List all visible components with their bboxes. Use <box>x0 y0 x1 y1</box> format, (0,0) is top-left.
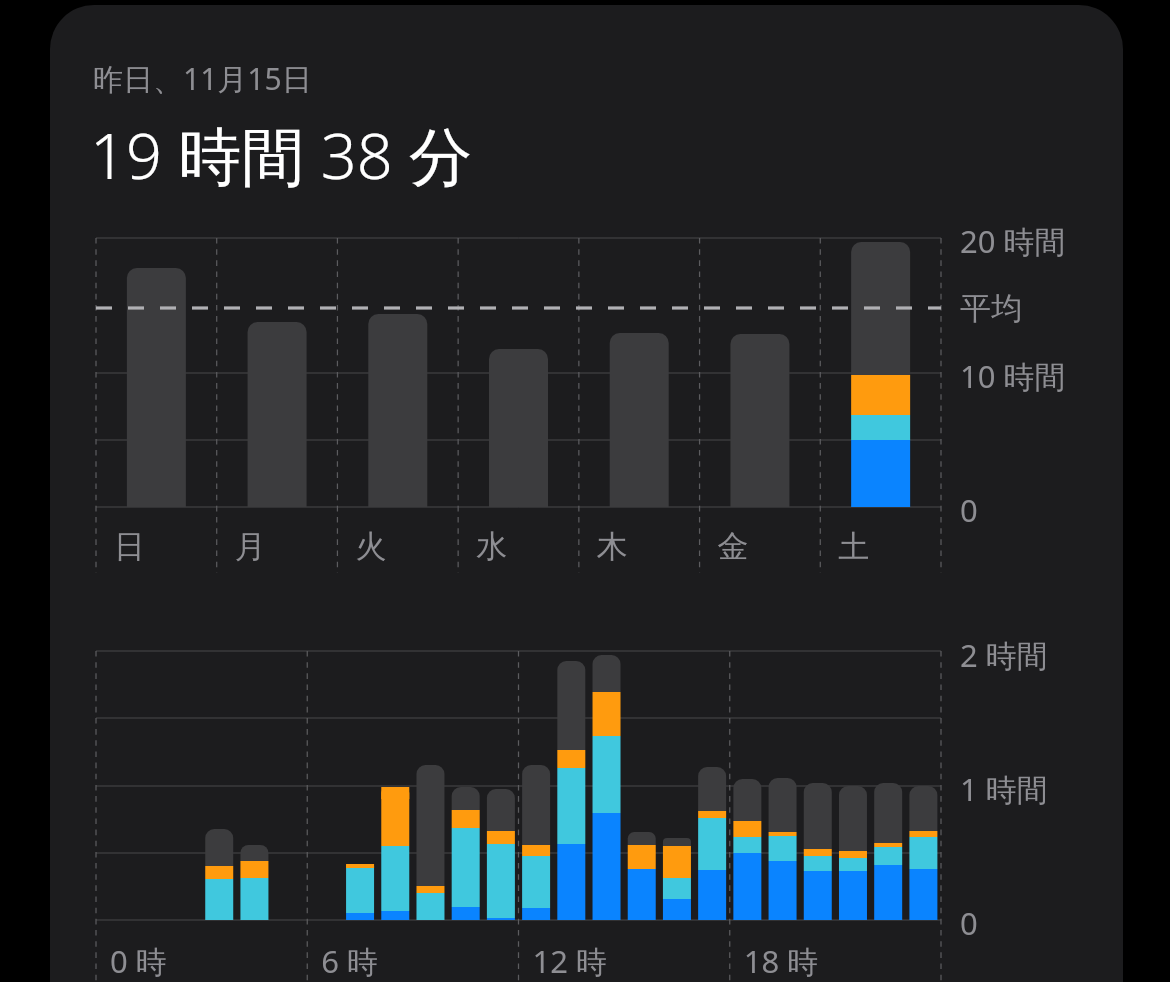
button[interactable]: 睡眠データ 昨日 11月15日 <box>0 0 1170 982</box>
